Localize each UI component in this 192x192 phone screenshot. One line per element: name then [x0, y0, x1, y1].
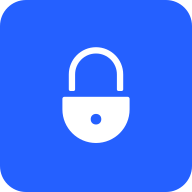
button[interactable]: Unlock	[0, 0, 192, 192]
